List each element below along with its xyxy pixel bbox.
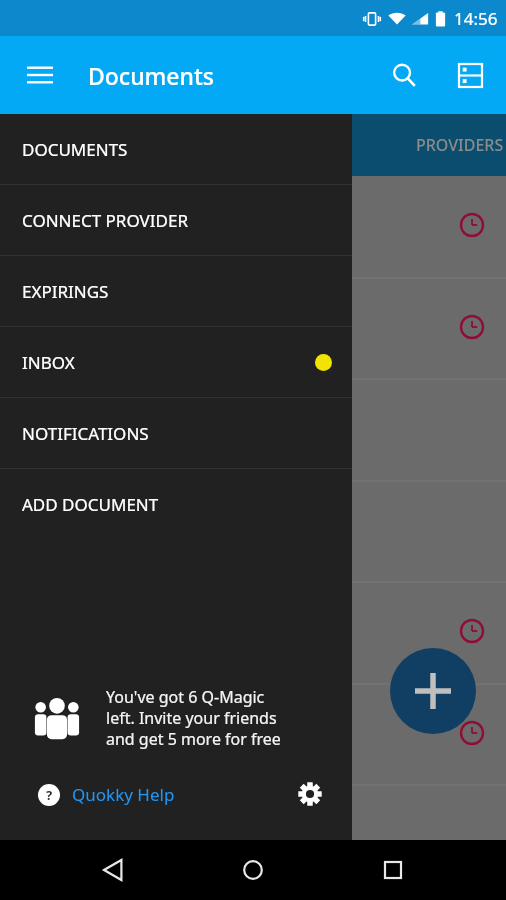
button[interactable]: EXPIRINGS <box>0 256 352 326</box>
staticText: ADD DOCUMENT <box>22 493 159 516</box>
staticText: PROVIDERS <box>416 134 504 156</box>
staticText: You've got 6 Q-Magic left. Invite your f… <box>106 686 281 750</box>
button[interactable]: PROVIDERS <box>416 134 506 156</box>
button[interactable]: View list <box>446 51 494 99</box>
button[interactable]: Back <box>86 843 140 897</box>
button[interactable]: INBOX <box>0 327 352 397</box>
button[interactable]: Add document <box>390 648 476 734</box>
staticText: Documents <box>88 60 214 91</box>
button[interactable]: Settings <box>290 774 330 814</box>
button[interactable]: Recents <box>366 843 420 897</box>
button[interactable]: ADD DOCUMENT <box>0 469 352 539</box>
staticText: CONNECT PROVIDER <box>22 209 188 232</box>
button[interactable]: ? <box>38 783 175 806</box>
button[interactable]: Home <box>226 843 280 897</box>
staticText: DOCUMENTS <box>22 138 128 161</box>
button[interactable]: NOTIFICATIONS <box>0 398 352 468</box>
staticText: NOTIFICATIONS <box>22 422 149 445</box>
staticText: 14:56 <box>454 7 498 30</box>
button[interactable]: Search <box>380 51 428 99</box>
staticText: EXPIRINGS <box>22 280 109 303</box>
staticText: INBOX <box>22 351 75 374</box>
button[interactable]: DOCUMENTS <box>0 114 352 184</box>
button[interactable]: Open navigation drawer <box>16 51 64 99</box>
button[interactable]: You've got 6 Q-Magic left. Invite your f… <box>0 686 352 758</box>
staticText: Quokky Help <box>72 783 175 806</box>
staticText: ? <box>46 786 53 804</box>
button[interactable]: CONNECT PROVIDER <box>0 185 352 255</box>
